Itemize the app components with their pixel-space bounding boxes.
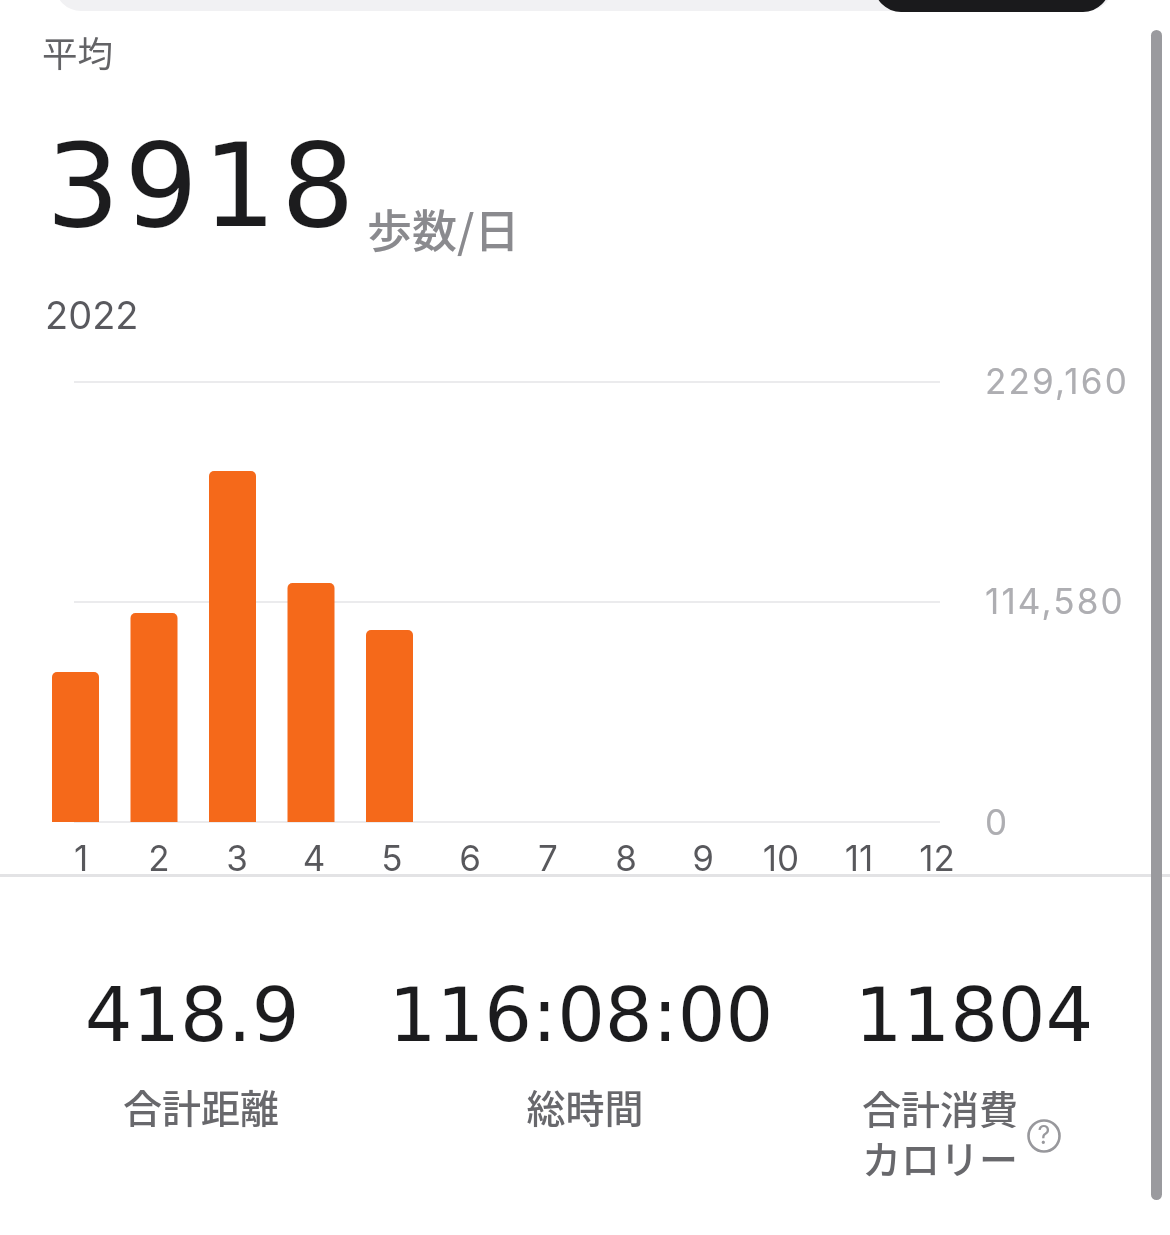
button[interactable]: [1016, 1108, 1072, 1164]
staticText: 3: [197, 837, 277, 879]
staticText: 2022: [45, 292, 139, 338]
staticText: 11804: [824, 971, 1124, 1058]
staticText: ?: [1024, 1120, 1064, 1150]
button[interactable]: [55, 0, 1113, 11]
staticText: 平均: [42, 26, 114, 77]
staticText: 歩数/日: [367, 196, 520, 261]
staticText: 10: [741, 837, 821, 879]
staticText: カロリー: [862, 1129, 1019, 1185]
staticText: 0: [985, 801, 1010, 843]
staticText: 1: [41, 837, 121, 879]
staticText: 合計消費: [862, 1079, 1019, 1135]
staticText: 418.9: [42, 971, 342, 1058]
staticText: 9: [663, 837, 743, 879]
staticText: 4: [274, 837, 354, 879]
staticText: 6: [430, 837, 510, 879]
staticText: 合計距離: [81, 1078, 321, 1134]
staticText: 3918: [46, 118, 360, 253]
staticText: 114,580: [985, 580, 1125, 622]
staticText: 12: [897, 837, 977, 879]
staticText: 7: [508, 837, 588, 879]
staticText: 116:08:00: [361, 971, 801, 1058]
staticText: 総時間: [465, 1078, 705, 1134]
staticText: 5: [352, 837, 432, 879]
staticText: 229,160: [985, 360, 1129, 402]
button[interactable]: [874, 0, 1110, 12]
staticText: 11: [819, 837, 899, 879]
staticText: 2: [119, 837, 199, 879]
staticText: 8: [586, 837, 666, 879]
